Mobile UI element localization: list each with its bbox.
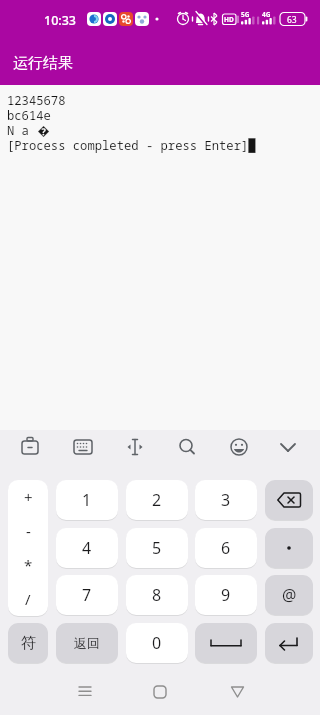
staticText: 6 <box>221 537 231 559</box>
staticText: 5G <box>241 10 250 19</box>
staticText: - <box>26 521 31 541</box>
button[interactable] <box>140 675 180 710</box>
button[interactable] <box>65 675 105 710</box>
button[interactable]: 2 <box>126 480 188 520</box>
button[interactable]: 5 <box>126 528 188 568</box>
staticText: 10:33 <box>44 12 77 29</box>
staticText: 返回 <box>74 635 100 651</box>
staticText: 8 <box>152 584 162 606</box>
button[interactable]: 1 <box>56 480 118 520</box>
button[interactable]: 9 <box>195 575 257 615</box>
button[interactable]: + <box>8 480 48 616</box>
staticText: * <box>24 555 33 575</box>
button[interactable]: 7 <box>56 575 118 615</box>
staticText: 12345678 bc614e N a � [Process completed… <box>7 92 256 153</box>
staticText: 3 <box>221 489 231 511</box>
staticText: / <box>25 589 31 609</box>
button[interactable]: 0 <box>126 623 188 663</box>
staticText: 5 <box>152 537 162 559</box>
button[interactable] <box>265 480 313 520</box>
staticText: 2 <box>152 489 162 511</box>
button[interactable]: 符 <box>8 623 48 663</box>
staticText: 运行结果 <box>13 54 73 73</box>
button[interactable]: 3 <box>195 480 257 520</box>
button[interactable] <box>265 623 313 663</box>
staticText: + <box>24 487 33 507</box>
button[interactable]: 返回 <box>56 623 118 663</box>
button[interactable]: @ <box>265 575 313 615</box>
button[interactable]: 6 <box>195 528 257 568</box>
staticText: 9 <box>221 584 231 606</box>
button[interactable] <box>195 623 257 663</box>
staticText: HD <box>224 15 234 24</box>
button[interactable] <box>265 528 313 568</box>
button[interactable]: 8 <box>126 575 188 615</box>
staticText: 符 <box>21 634 36 653</box>
staticText: @ <box>282 584 297 606</box>
staticText: 1 <box>82 489 92 511</box>
staticText: 7 <box>82 584 92 606</box>
button[interactable] <box>217 675 257 710</box>
button[interactable]: 4 <box>56 528 118 568</box>
staticText: 63 <box>287 14 297 26</box>
staticText: 0 <box>152 632 162 654</box>
staticText: 4G <box>262 10 271 19</box>
staticText: 4 <box>82 537 92 559</box>
